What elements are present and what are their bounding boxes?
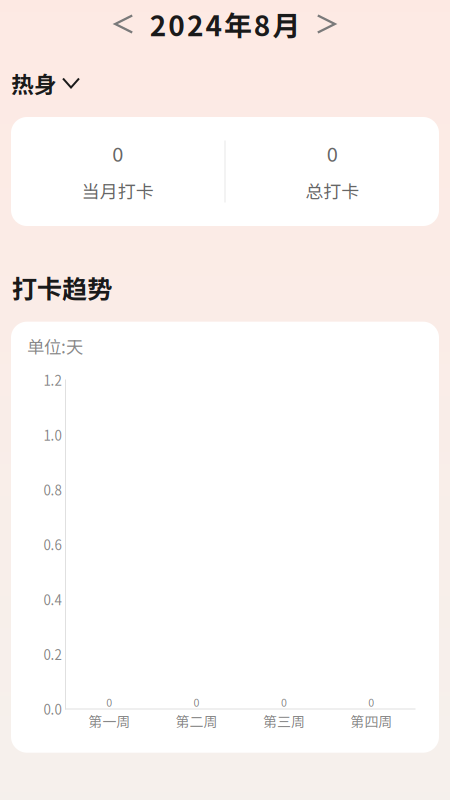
staticText: 总打卡 — [305, 177, 359, 204]
staticText: 0.0 — [43, 699, 61, 719]
staticText: 第三周 — [263, 711, 305, 731]
staticText: 热身 — [11, 67, 57, 99]
staticText: 单位:天 — [27, 333, 83, 359]
staticText: 第四周 — [350, 711, 392, 731]
staticText: 1.0 — [43, 425, 61, 444]
button[interactable]: Next month — [303, 4, 349, 44]
staticText: 第一周 — [88, 711, 130, 731]
staticText: 1.2 — [43, 370, 61, 390]
staticText: 0 — [327, 138, 338, 167]
staticText: 0.6 — [43, 535, 61, 554]
button[interactable]: 热身 — [0, 48, 450, 118]
button[interactable]: Previous month — [101, 4, 147, 44]
staticText: 0 — [106, 694, 112, 710]
staticText: 0 — [368, 694, 374, 710]
staticText: 当月打卡 — [82, 177, 154, 204]
staticText: 0.8 — [43, 480, 61, 499]
staticText: 打卡趋势 — [12, 269, 112, 306]
staticText: 0.2 — [43, 644, 61, 664]
staticText: 0 — [281, 694, 287, 710]
staticText: 第二周 — [176, 711, 218, 731]
staticText: 0.4 — [43, 590, 61, 609]
staticText: 2024年8月 — [150, 4, 300, 44]
staticText: 0 — [112, 138, 123, 167]
staticText: 0 — [194, 694, 200, 710]
